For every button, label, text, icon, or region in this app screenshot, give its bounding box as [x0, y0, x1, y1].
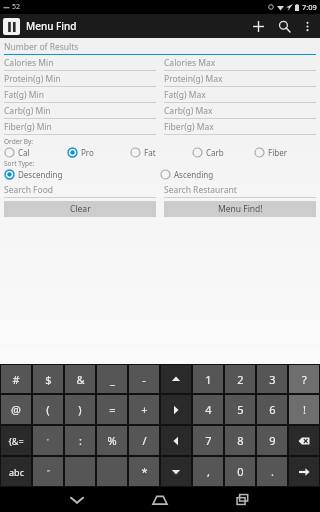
button[interactable]: , — [193, 457, 223, 486]
button[interactable]: Up — [161, 365, 191, 393]
button[interactable]: Carb(g) Max — [164, 104, 316, 119]
button[interactable]: ' — [33, 426, 63, 455]
button[interactable]: ! — [289, 395, 319, 424]
button[interactable]: Home — [132, 487, 187, 512]
staticText: 52 — [12, 2, 21, 12]
button[interactable]: ? — [289, 365, 319, 393]
staticText: " — [47, 468, 50, 476]
button[interactable]: * — [129, 457, 159, 486]
button[interactable]: Down — [161, 457, 191, 486]
button[interactable]: Menu Find! — [164, 201, 316, 217]
button[interactable]: 5 — [225, 395, 255, 424]
staticText: _ — [110, 372, 115, 387]
button[interactable]: Carb — [192, 147, 254, 158]
staticText: Calories Min — [4, 57, 54, 69]
button[interactable]: Fiber(g) Max — [164, 120, 316, 135]
button[interactable]: Number of Results — [4, 40, 316, 55]
staticText: Menu Find — [26, 19, 77, 33]
button[interactable]: Calories Max — [164, 56, 316, 71]
staticText: Pro — [81, 147, 94, 158]
button[interactable]: + — [129, 395, 159, 424]
staticText: ? — [302, 372, 307, 387]
staticText: Fiber(g) Min — [4, 121, 52, 133]
staticText: % — [107, 433, 117, 448]
staticText: Carb(g) Min — [4, 105, 51, 117]
staticText: 3 — [269, 372, 276, 387]
button[interactable]: Fiber(g) Min — [4, 120, 156, 135]
button[interactable]: App icon — [3, 18, 20, 35]
button[interactable]: 7 — [193, 426, 223, 455]
button[interactable]: Carb(g) Min — [4, 104, 156, 119]
staticText: * — [141, 464, 148, 479]
button[interactable]: Pro — [67, 147, 130, 158]
button[interactable]: More options — [297, 16, 317, 36]
button[interactable]: 9 — [257, 426, 287, 455]
button[interactable]: 8 — [225, 426, 255, 455]
button[interactable]: Protein(g) Min — [4, 72, 156, 87]
button[interactable]: 3 — [257, 365, 287, 393]
button[interactable]: Ascending — [160, 169, 316, 180]
button[interactable]: Fat — [130, 147, 192, 158]
button[interactable]: Hide keyboard — [49, 487, 104, 512]
button[interactable]: 4 — [193, 395, 223, 424]
button[interactable]: - — [129, 365, 159, 393]
button[interactable]: Protein(g) Max — [164, 72, 316, 87]
button[interactable]: : — [65, 426, 95, 455]
button[interactable]: Search Restaurant — [164, 183, 316, 198]
button[interactable]: Calories Min — [4, 56, 156, 71]
staticText: Fat(g) Min — [4, 89, 44, 101]
button[interactable]: Search Food — [4, 183, 156, 198]
button[interactable]: . — [257, 457, 287, 486]
button[interactable]: Right — [161, 395, 191, 424]
staticText: & — [76, 372, 85, 387]
staticText: : — [79, 433, 82, 448]
button[interactable]: @ — [1, 395, 31, 424]
staticText: 5 — [237, 402, 244, 417]
button[interactable]: {&= — [1, 426, 31, 455]
button[interactable]: 2 — [225, 365, 255, 393]
staticText: 4 — [205, 402, 212, 417]
button[interactable]: Fiber — [254, 147, 316, 158]
button[interactable]: Fat(g) Max — [164, 88, 316, 103]
button[interactable]: $ — [33, 365, 63, 393]
button[interactable]: abc — [1, 457, 31, 486]
button[interactable]: # — [1, 365, 31, 393]
button[interactable]: Left — [161, 426, 191, 455]
staticText: 0 — [237, 464, 244, 479]
staticText: $ — [45, 372, 52, 387]
button[interactable]: = — [97, 395, 127, 424]
staticText: Number of Results — [4, 41, 79, 53]
button[interactable]: Delete — [289, 426, 319, 455]
button[interactable]: / — [129, 426, 159, 455]
button[interactable]: 0 — [225, 457, 255, 486]
button[interactable]: Search — [271, 14, 297, 38]
button[interactable]: 6 — [257, 395, 287, 424]
staticText: , — [207, 464, 210, 479]
button[interactable]: & — [65, 365, 95, 393]
staticText: Fiber — [268, 147, 287, 158]
button[interactable]: Fat(g) Min — [4, 88, 156, 103]
button[interactable]: Add — [245, 14, 271, 38]
button[interactable]: Recent apps — [215, 487, 270, 512]
staticText: Carb — [206, 147, 224, 158]
staticText: Fat(g) Max — [164, 89, 206, 101]
button[interactable]: ( — [33, 395, 63, 424]
button[interactable]: _ — [97, 365, 127, 393]
button[interactable]: Clear — [4, 201, 156, 217]
button[interactable]: Cal — [4, 147, 67, 158]
staticText: Fiber(g) Max — [164, 121, 214, 133]
button[interactable]: % — [97, 426, 127, 455]
staticText: Menu Find! — [218, 203, 263, 215]
button[interactable]: ) — [65, 395, 95, 424]
button[interactable]: Descending — [4, 169, 160, 180]
button[interactable]: Enter — [289, 457, 319, 486]
button[interactable]: " — [33, 457, 63, 486]
staticText: 8 — [237, 433, 244, 448]
staticText: = — [109, 402, 116, 417]
staticText: Protein(g) Min — [4, 73, 61, 85]
staticText: abc — [9, 466, 24, 478]
button[interactable]: 1 — [193, 365, 223, 393]
staticText: Sort Type: — [4, 159, 35, 168]
